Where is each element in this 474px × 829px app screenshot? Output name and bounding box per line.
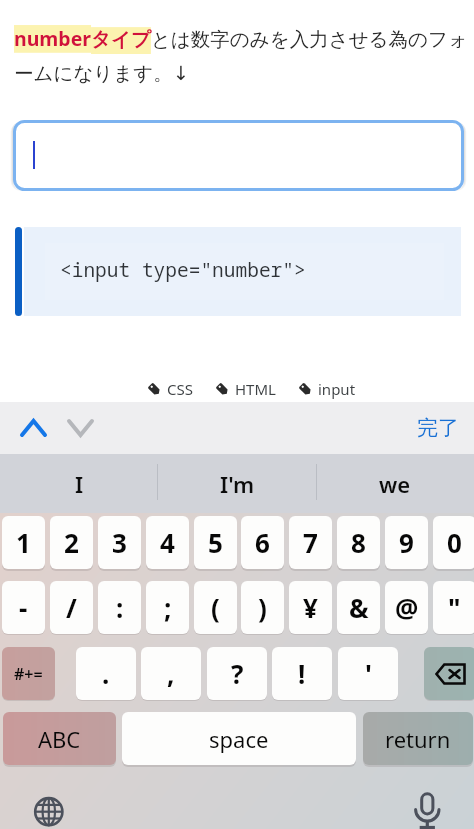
button[interactable]: Previous field [11, 406, 56, 450]
button[interactable]: Dictation [405, 789, 451, 829]
button[interactable]: @ [385, 581, 428, 634]
staticText: ! [298, 656, 306, 691]
button[interactable]: ( [194, 581, 237, 634]
button[interactable]: space [122, 712, 356, 765]
button[interactable]: , [141, 647, 201, 700]
button[interactable]: 7 [289, 516, 332, 569]
staticText: we [379, 469, 411, 499]
staticText: 1 [16, 525, 31, 560]
button[interactable]: 5 [194, 516, 237, 569]
staticText: - [19, 590, 28, 625]
button[interactable]: I [0, 454, 158, 513]
staticText: ; [164, 590, 172, 625]
staticText: ? [231, 656, 244, 691]
button[interactable]: we [316, 454, 474, 513]
staticText: ABC [38, 724, 81, 754]
staticText: 完了 [417, 415, 459, 441]
staticText: 0 [447, 525, 462, 560]
button[interactable]: & [337, 581, 380, 634]
button[interactable]: ? [207, 647, 267, 700]
button[interactable]: ' [338, 647, 398, 700]
button[interactable] [13, 120, 464, 191]
button[interactable]: 6 [241, 516, 284, 569]
button[interactable]: Next field [58, 406, 103, 450]
button[interactable]: : [98, 581, 141, 634]
staticText: : [116, 590, 124, 625]
staticText: 5 [208, 525, 223, 560]
staticText: 4 [160, 525, 175, 560]
button[interactable]: #+= [2, 647, 55, 700]
button[interactable]: Switch keyboard [26, 789, 72, 829]
staticText: #+= [14, 663, 43, 685]
button[interactable]: . [76, 647, 136, 700]
staticText: & [349, 590, 369, 625]
staticText: ' [365, 656, 372, 691]
button[interactable]: - [2, 581, 45, 634]
staticText: ¥ [303, 590, 318, 625]
button[interactable]: Delete [424, 647, 474, 700]
staticText: space [209, 724, 269, 754]
button[interactable]: return [363, 712, 473, 765]
button[interactable]: 9 [385, 516, 428, 569]
button[interactable]: 2 [50, 516, 93, 569]
staticText: I'm [220, 469, 255, 499]
button[interactable]: / [50, 581, 93, 634]
button[interactable]: input [299, 379, 356, 399]
staticText: I [75, 469, 84, 499]
staticText: 3 [112, 525, 127, 560]
staticText: ( [211, 590, 220, 625]
button[interactable]: ¥ [289, 581, 332, 634]
staticText: numberタイプとは数字のみを入力させる為のフォームになります。↓ [14, 25, 472, 85]
button[interactable]: ABC [3, 712, 116, 765]
staticText: HTML [235, 379, 276, 399]
staticText: 2 [64, 525, 79, 560]
staticText: ) [258, 590, 267, 625]
button[interactable]: 完了 [417, 415, 459, 441]
staticText: 9 [399, 525, 414, 560]
button[interactable]: 3 [98, 516, 141, 569]
staticText: " [448, 590, 461, 625]
button[interactable]: 1 [2, 516, 45, 569]
staticText: return [385, 724, 451, 754]
staticText: 8 [351, 525, 366, 560]
button[interactable]: ; [146, 581, 189, 634]
staticText: 6 [255, 525, 270, 560]
staticText: @ [395, 590, 419, 625]
staticText: 7 [303, 525, 318, 560]
staticText: / [66, 590, 77, 625]
staticText: CSS [167, 379, 193, 399]
button[interactable]: ! [272, 647, 332, 700]
button[interactable]: I'm [158, 454, 316, 513]
staticText: <input type="number"> [60, 256, 306, 283]
button[interactable]: 4 [146, 516, 189, 569]
staticText: input [318, 379, 356, 399]
button[interactable]: 8 [337, 516, 380, 569]
staticText: . [102, 656, 110, 691]
button[interactable]: CSS [148, 379, 193, 399]
button[interactable]: ) [241, 581, 284, 634]
button[interactable]: HTML [216, 379, 276, 399]
staticText: , [167, 656, 175, 691]
button[interactable]: 0 [433, 516, 474, 569]
button[interactable]: " [433, 581, 474, 634]
